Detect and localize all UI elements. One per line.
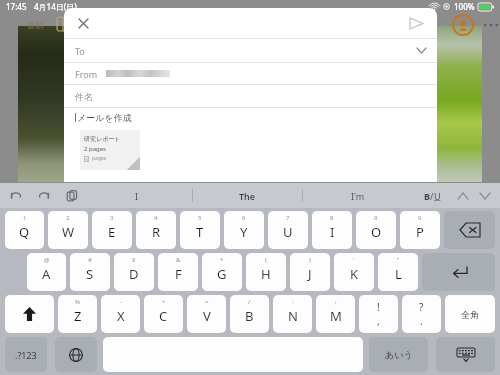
- staticText: /: [430, 190, 434, 202]
- button[interactable]: 7: [268, 211, 308, 249]
- staticText: Y: [240, 223, 248, 241]
- button[interactable]: 5: [180, 211, 220, 249]
- staticText: *: [220, 256, 224, 264]
- staticText: I'm: [351, 190, 365, 202]
- button[interactable]: ?: [402, 295, 441, 333]
- button[interactable]: B: [412, 183, 452, 208]
- button[interactable]: #: [70, 253, 110, 291]
- button[interactable]: 8: [312, 211, 352, 249]
- button[interactable]: Paste: [62, 186, 82, 206]
- staticText: 件名: [75, 91, 93, 102]
- staticText: W: [62, 223, 75, 241]
- button[interactable]: 書類: [22, 16, 48, 34]
- staticText: -: [120, 298, 122, 306]
- button[interactable]: :: [273, 295, 312, 333]
- button[interactable]: Hide keyboard: [436, 337, 495, 372]
- button[interactable]: %: [58, 295, 97, 333]
- staticText: @: [44, 256, 50, 264]
- button[interactable]: To: [64, 39, 437, 62]
- button[interactable]: From: [64, 63, 437, 84]
- staticText: B: [245, 307, 254, 325]
- button[interactable]: !: [359, 295, 398, 333]
- button[interactable]: Space: [103, 337, 363, 372]
- staticText: 7: [286, 214, 290, 222]
- staticText: ¥: [132, 256, 136, 264]
- staticText: The: [239, 190, 256, 202]
- staticText: T: [196, 223, 204, 241]
- button[interactable]: Language: [55, 337, 97, 372]
- staticText: ;: [335, 298, 337, 306]
- staticText: 1: [23, 214, 27, 222]
- button[interactable]: +: [144, 295, 183, 333]
- staticText: .: [420, 314, 423, 328]
- button[interactable]: Undo: [6, 186, 26, 206]
- staticText: &: [176, 256, 181, 264]
- button[interactable]: 2: [48, 211, 88, 249]
- staticText: C: [159, 307, 168, 325]
- staticText: 2: [66, 214, 70, 222]
- button[interactable]: Redo: [34, 186, 54, 206]
- button[interactable]: (: [246, 253, 286, 291]
- button[interactable]: ;: [316, 295, 355, 333]
- staticText: 4: [154, 214, 158, 222]
- button[interactable]: Shift: [5, 295, 54, 333]
- button[interactable]: ': [334, 253, 374, 291]
- staticText: .?123: [15, 349, 37, 361]
- button[interactable]: 件名: [64, 85, 437, 107]
- button[interactable]: ": [378, 253, 418, 291]
- button[interactable]: 研究レポート attachment: [80, 130, 140, 170]
- staticText: P: [416, 223, 424, 241]
- staticText: 全角: [461, 309, 479, 320]
- staticText: %: [75, 298, 80, 306]
- button[interactable]: ¥: [114, 253, 154, 291]
- button[interactable]: Backspace: [444, 211, 495, 249]
- button[interactable]: .?123: [5, 337, 47, 372]
- staticText: 書類: [27, 20, 43, 30]
- staticText: 研究レポート: [84, 135, 121, 143]
- button[interactable]: Next field: [474, 183, 496, 208]
- button[interactable]: @: [27, 253, 66, 291]
- staticText: 2 pages: [84, 145, 106, 153]
- button[interactable]: =: [187, 295, 226, 333]
- button[interactable]: ): [290, 253, 330, 291]
- button[interactable]: 0: [400, 211, 440, 249]
- button[interactable]: Return: [422, 253, 495, 291]
- button[interactable]: 4: [136, 211, 176, 249]
- staticText: H: [261, 265, 271, 283]
- button[interactable]: Send: [405, 12, 427, 34]
- staticText: G: [217, 265, 227, 283]
- staticText: ,: [377, 314, 380, 328]
- button[interactable]: I'm: [303, 183, 412, 208]
- button[interactable]: Close: [72, 12, 94, 34]
- staticText: Z: [74, 307, 82, 325]
- button[interactable]: Previous field: [452, 183, 474, 208]
- staticText: R: [152, 223, 161, 241]
- staticText: ': [353, 256, 355, 264]
- button[interactable]: 9: [356, 211, 396, 249]
- button[interactable]: Account: [452, 14, 474, 36]
- staticText: V: [203, 307, 211, 325]
- staticText: あいう: [385, 349, 413, 360]
- button[interactable]: I: [82, 183, 192, 208]
- button[interactable]: 1: [5, 211, 44, 249]
- button[interactable]: The: [193, 183, 302, 208]
- staticText: X: [117, 307, 125, 325]
- button[interactable]: 全角: [445, 295, 495, 333]
- button[interactable]: *: [202, 253, 242, 291]
- staticText: 5: [198, 214, 202, 222]
- staticText: =: [205, 298, 209, 306]
- button[interactable]: Sidebar: [54, 14, 76, 34]
- button[interactable]: More options: [482, 16, 500, 34]
- staticText: I: [135, 190, 139, 202]
- staticText: ): [309, 256, 311, 264]
- button[interactable]: 3: [92, 211, 132, 249]
- staticText: pages: [92, 155, 107, 162]
- button[interactable]: 6: [224, 211, 264, 249]
- staticText: E: [108, 223, 116, 241]
- button[interactable]: -: [101, 295, 140, 333]
- button[interactable]: &: [158, 253, 198, 291]
- staticText: S: [86, 265, 94, 283]
- button[interactable]: あいう: [369, 337, 428, 372]
- button[interactable]: /: [230, 295, 269, 333]
- staticText: 4月14日(日): [34, 1, 77, 12]
